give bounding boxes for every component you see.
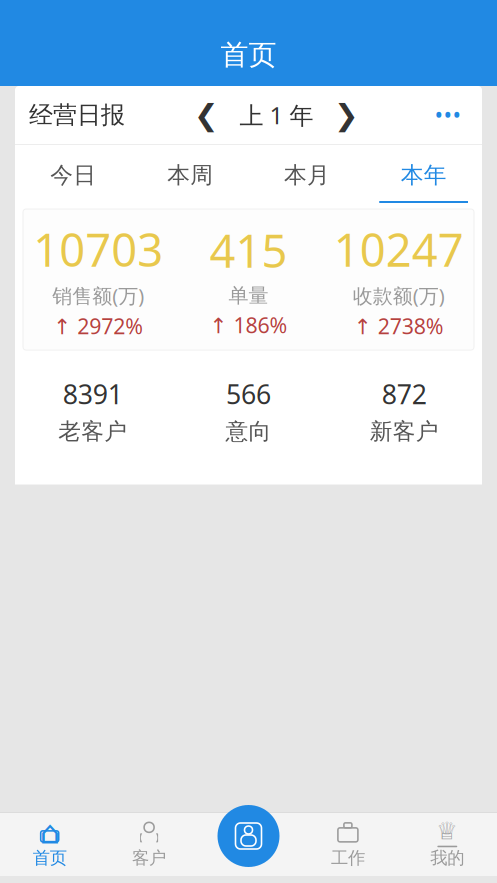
button[interactable]: 客户 bbox=[99, 813, 199, 876]
button[interactable]: 今日 bbox=[15, 145, 132, 203]
staticText: ⌂ bbox=[40, 814, 60, 850]
staticText: 首页 bbox=[220, 38, 276, 72]
staticText: ❮ bbox=[194, 98, 219, 132]
staticText: 今日 bbox=[50, 161, 96, 189]
button[interactable]: ⌂ bbox=[0, 813, 99, 876]
staticText: 8391 bbox=[63, 376, 123, 411]
button[interactable]: 872 bbox=[326, 376, 482, 445]
staticText: 老客户 bbox=[58, 417, 127, 445]
staticText: 566 bbox=[226, 376, 271, 411]
button[interactable]: 更多 bbox=[428, 93, 468, 137]
staticText: 本月 bbox=[284, 161, 330, 189]
staticText: 客户 bbox=[132, 847, 166, 869]
staticText: 工作 bbox=[331, 847, 365, 869]
staticText: ❯ bbox=[334, 98, 359, 132]
button[interactable]: 566 bbox=[171, 376, 326, 445]
button[interactable]: 工作 bbox=[298, 813, 398, 876]
staticText: 意向 bbox=[225, 417, 271, 445]
button[interactable]: 本周 bbox=[132, 145, 249, 203]
staticText: ♕ bbox=[436, 817, 458, 845]
staticText: 872 bbox=[382, 376, 427, 411]
staticText: 我的 bbox=[430, 847, 464, 869]
button[interactable]: ♕ bbox=[398, 813, 497, 876]
staticText: 首页 bbox=[33, 847, 67, 869]
staticText: 415 bbox=[209, 220, 287, 280]
staticText: 10703 bbox=[33, 219, 163, 279]
staticText: ↑ 2738% bbox=[354, 312, 444, 340]
staticText: 上 1 年 bbox=[239, 99, 313, 131]
button[interactable]: 本月 bbox=[248, 145, 365, 203]
staticText: 单量 bbox=[228, 283, 268, 308]
staticText: 收款额(万) bbox=[353, 282, 445, 309]
staticText: ↑ 186% bbox=[209, 311, 287, 339]
staticText: 本周 bbox=[167, 161, 213, 189]
button[interactable]: 上一年 bbox=[186, 93, 226, 137]
staticText: 暂无任务哦~ bbox=[184, 788, 312, 818]
button[interactable]: 本年 bbox=[365, 145, 482, 203]
staticText: ↑ 2972% bbox=[53, 312, 143, 340]
button[interactable]: 8391 bbox=[15, 376, 171, 445]
button[interactable]: 扫描客户 bbox=[217, 805, 279, 867]
staticText: 销售额(万) bbox=[52, 282, 144, 309]
staticText: 新客户 bbox=[370, 417, 439, 445]
staticText: ••• bbox=[434, 100, 461, 130]
button[interactable]: 下一年 bbox=[326, 93, 366, 137]
staticText: 经营日报 bbox=[29, 100, 125, 130]
staticText: 10247 bbox=[334, 219, 464, 279]
staticText: 本年 bbox=[401, 161, 447, 189]
